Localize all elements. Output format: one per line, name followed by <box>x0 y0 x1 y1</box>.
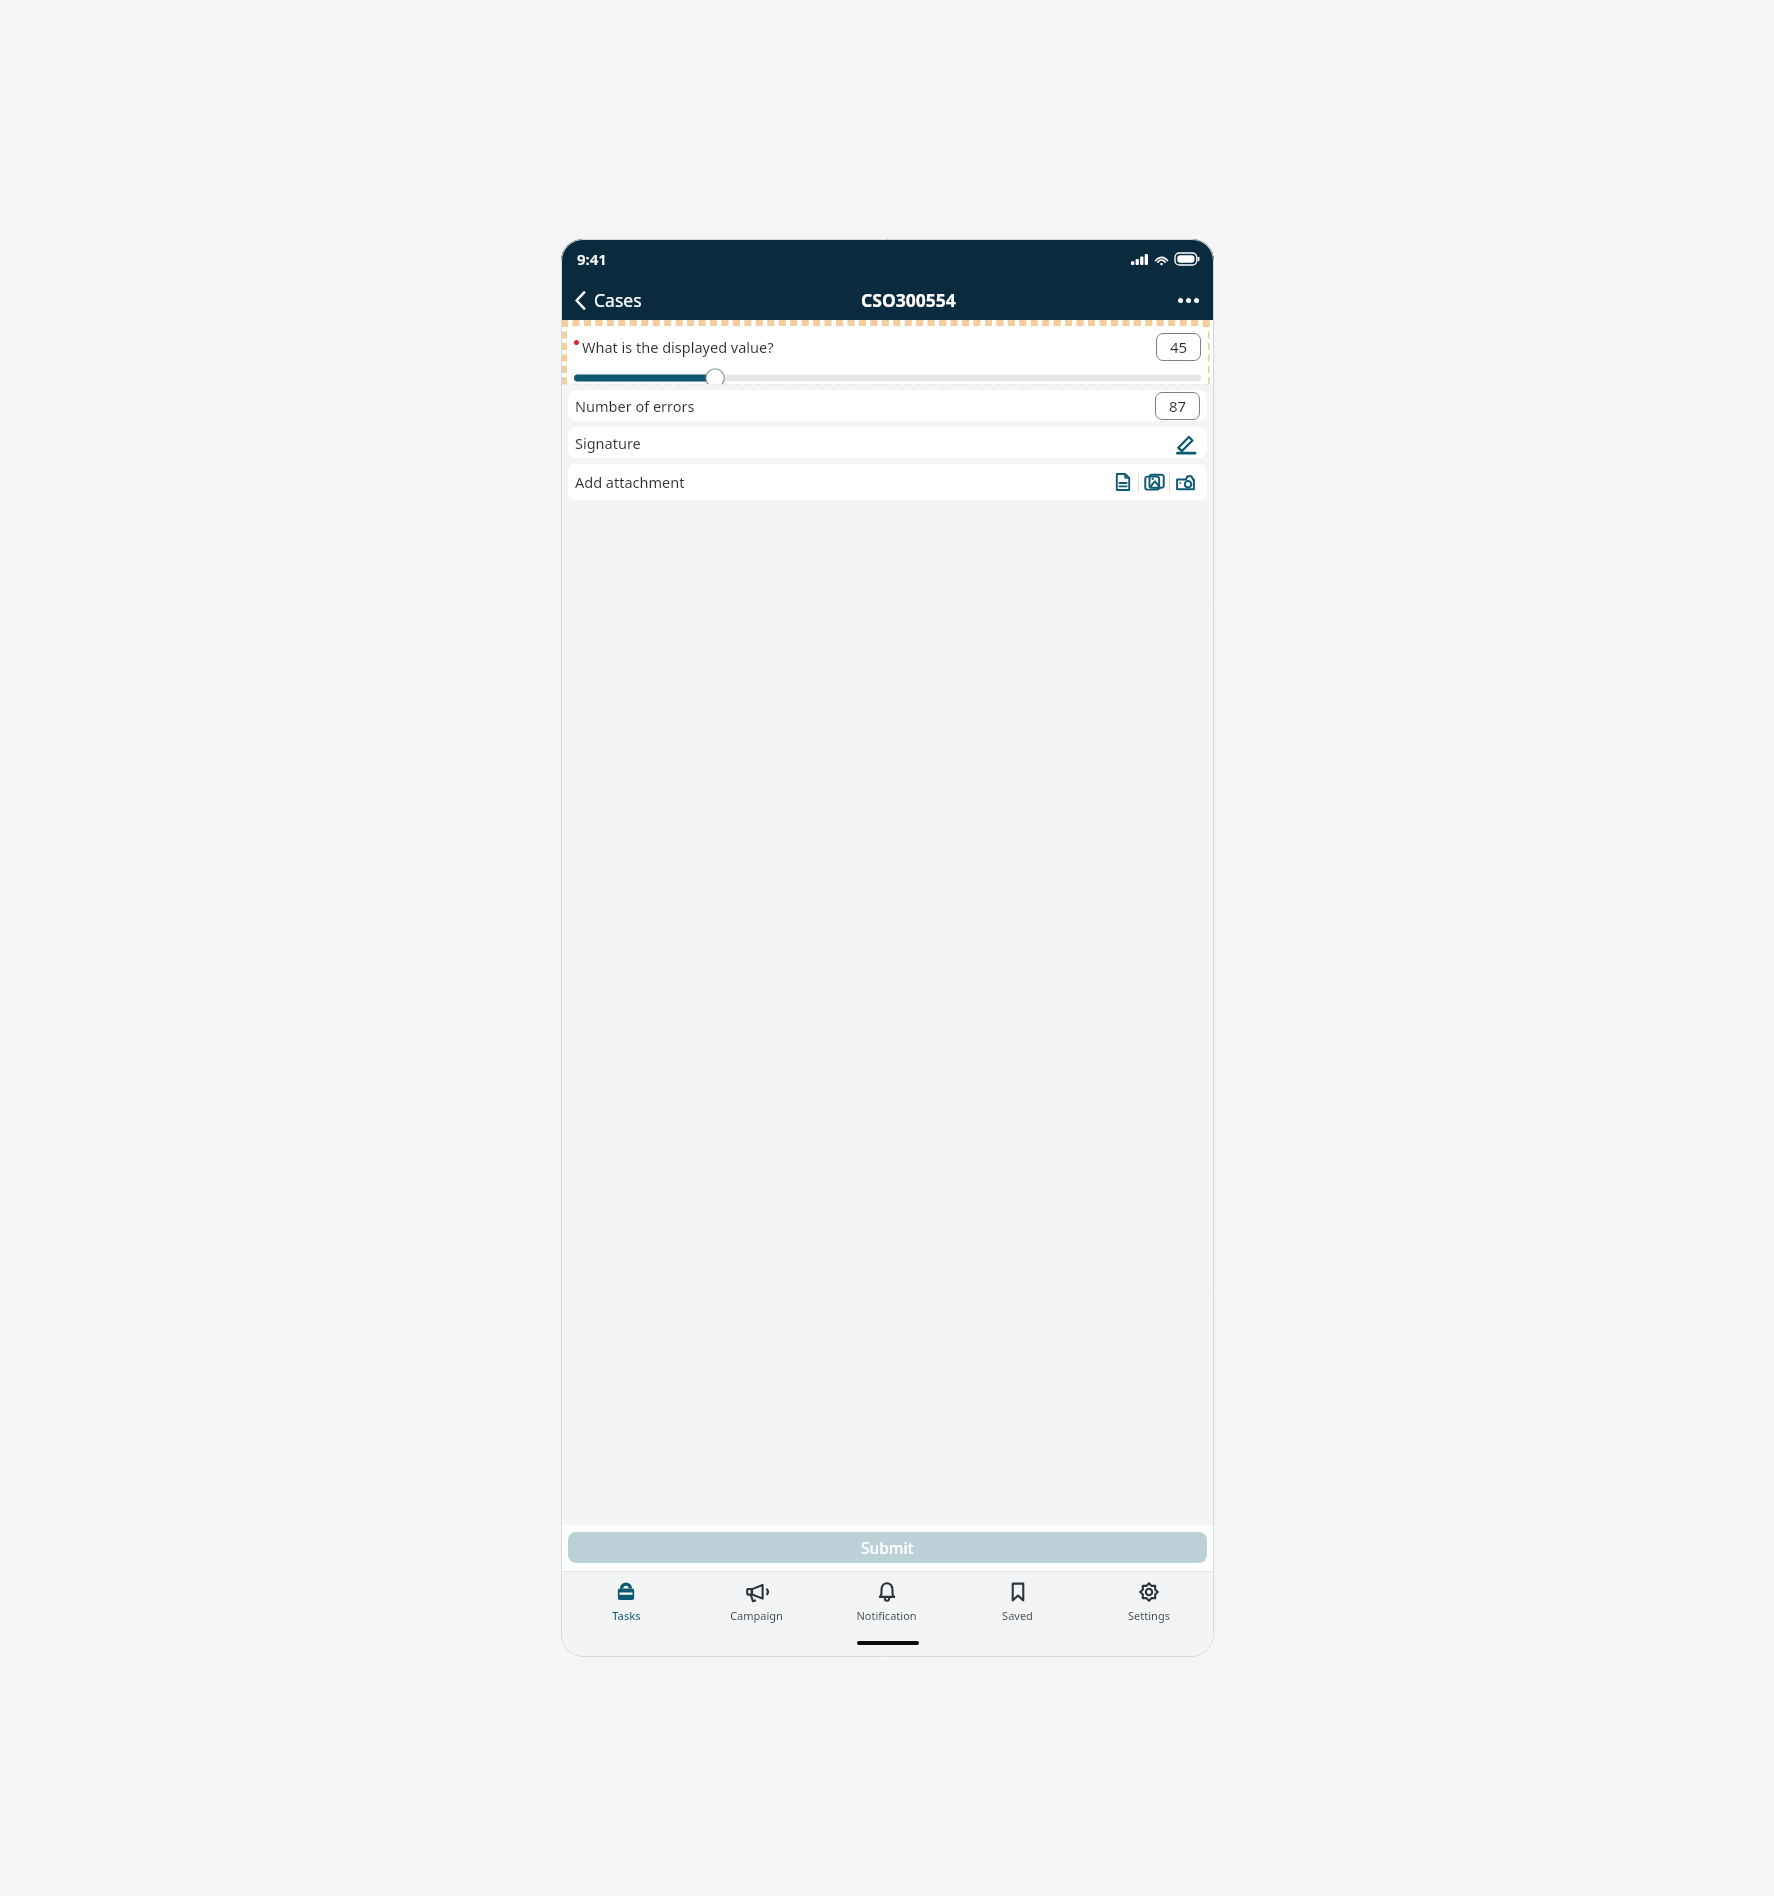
staticText: Campaign <box>730 1608 783 1623</box>
button[interactable]: 87 <box>1155 392 1200 420</box>
button[interactable]: Campaign <box>691 1572 821 1629</box>
button[interactable]: 45 <box>1156 333 1201 361</box>
button[interactable]: Attach document <box>1108 467 1138 497</box>
button[interactable]: Settings <box>1083 1572 1214 1629</box>
button[interactable]: Take photo <box>1170 467 1200 497</box>
staticText: Tasks <box>612 1608 641 1623</box>
staticText: 45 <box>1170 337 1188 357</box>
staticText: Submit <box>861 1537 914 1558</box>
button[interactable]: Attach photo <box>1139 467 1169 497</box>
staticText: 9:41 <box>577 249 607 269</box>
button[interactable]: Signature <box>568 427 1207 458</box>
button[interactable]: Saved <box>952 1572 1083 1629</box>
button[interactable]: Cases <box>569 283 648 317</box>
button[interactable]: Notification <box>821 1572 952 1629</box>
staticText: Add attachment <box>575 472 685 492</box>
button[interactable]: What is the displayed value? <box>567 326 1208 384</box>
button[interactable]: Number of errors <box>568 390 1207 421</box>
staticText: Saved <box>1002 1608 1033 1623</box>
staticText: Settings <box>1128 1608 1170 1623</box>
button[interactable] <box>574 372 1201 384</box>
button[interactable]: Submit <box>568 1532 1207 1563</box>
staticText: What is the displayed value? <box>582 337 774 357</box>
button[interactable]: More options <box>1170 282 1206 318</box>
staticText: CSO300554 <box>861 288 956 312</box>
staticText: 87 <box>1169 396 1187 416</box>
button[interactable]: Tasks <box>561 1572 691 1629</box>
staticText: Cases <box>594 288 642 312</box>
staticText: Number of errors <box>575 396 695 416</box>
staticText: Notification <box>856 1608 917 1623</box>
staticText: Signature <box>575 433 641 453</box>
button[interactable]: Sign <box>1170 428 1200 458</box>
